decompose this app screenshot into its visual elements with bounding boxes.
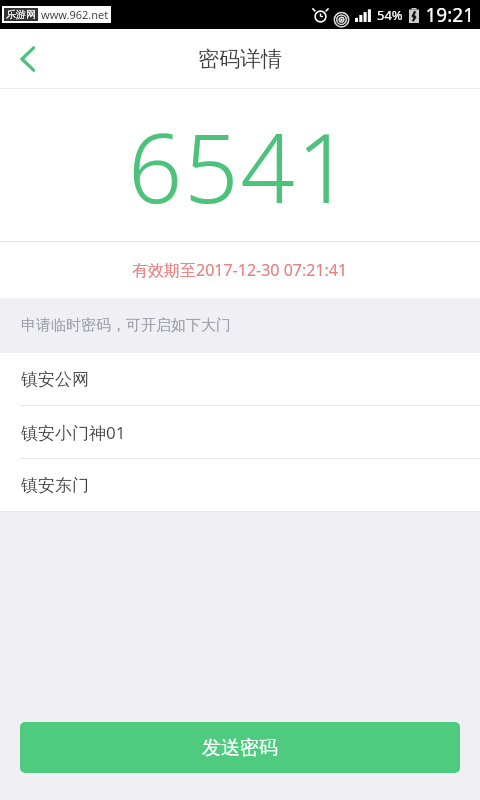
- staticText: 6541: [128, 101, 353, 230]
- staticText: 乐游网: [6, 8, 36, 21]
- staticText: 发送密码: [202, 736, 278, 760]
- staticText: 有效期至2017-12-30 07:21:41: [132, 259, 348, 281]
- button[interactable]: 镇安东门: [0, 459, 480, 511]
- button[interactable]: 镇安小门神01: [0, 406, 480, 459]
- button[interactable]: Back: [0, 29, 56, 89]
- button[interactable]: 镇安公网: [0, 353, 480, 406]
- staticText: 镇安东门: [21, 475, 89, 496]
- staticText: 镇安小门神01: [21, 421, 126, 444]
- staticText: 19:21: [425, 2, 474, 28]
- staticText: 密码详情: [198, 46, 282, 72]
- staticText: 镇安公网: [21, 369, 89, 390]
- staticText: 54%: [377, 6, 403, 24]
- staticText: www.962.net: [41, 7, 109, 22]
- staticText: 申请临时密码，可开启如下大门: [21, 316, 231, 335]
- button[interactable]: 发送密码: [20, 722, 460, 773]
